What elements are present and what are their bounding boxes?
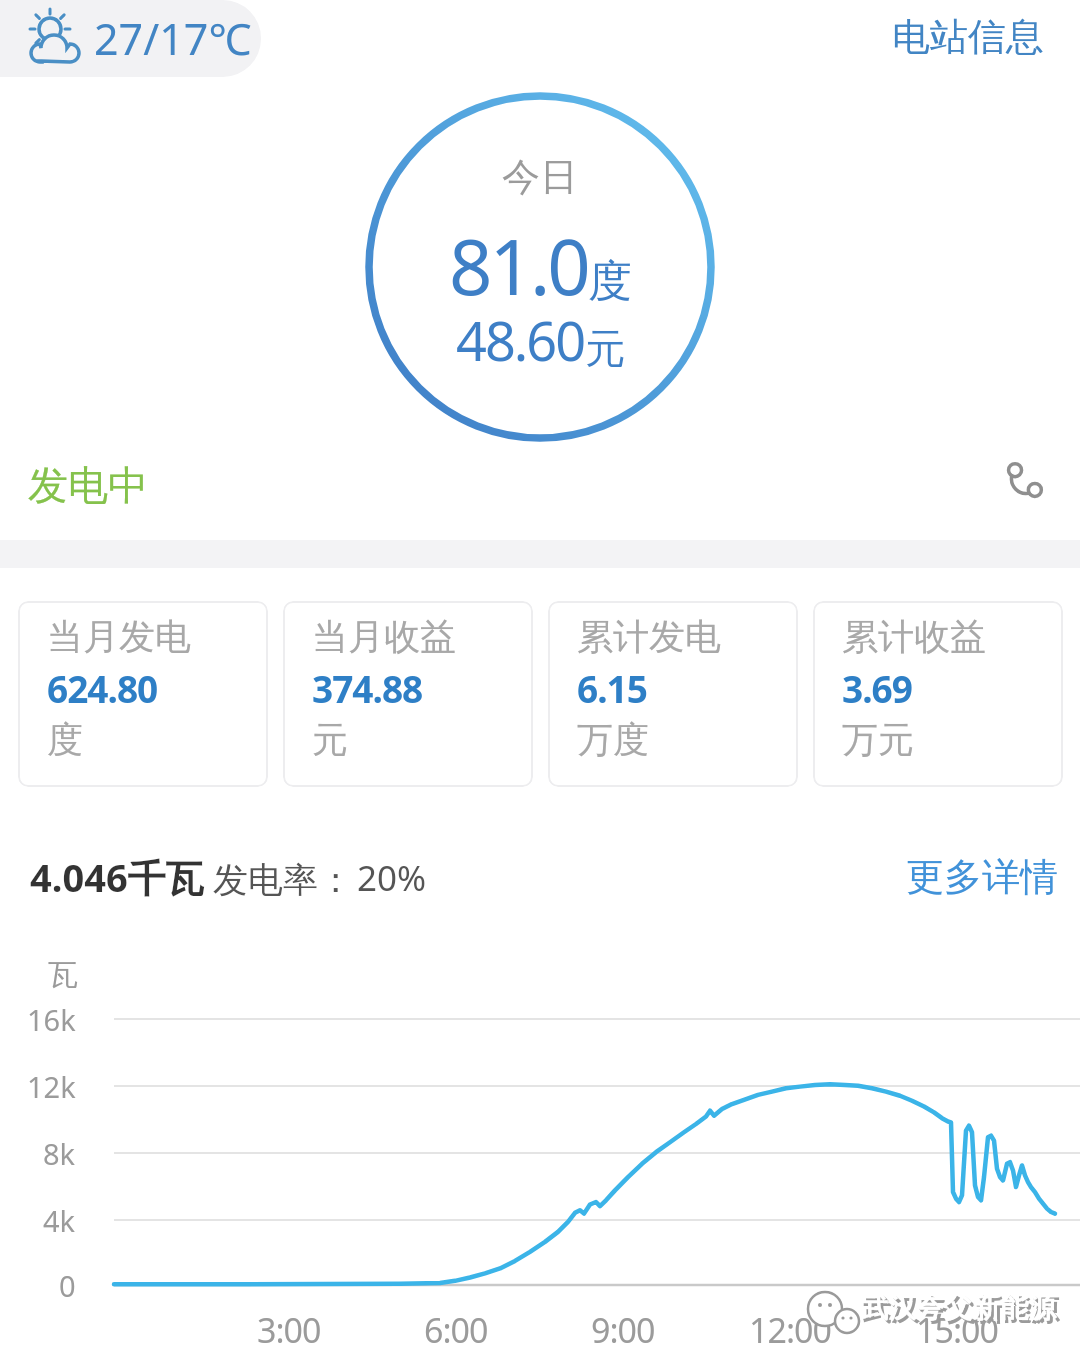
button[interactable]: [998, 463, 1042, 507]
staticText: 武汉夸父新能源: [863, 1293, 1059, 1328]
staticText: 6.15: [577, 663, 647, 713]
staticText: 累计收益: [842, 614, 986, 659]
staticText: 累计发电: [577, 614, 721, 659]
staticText: 6:00: [424, 1307, 488, 1353]
staticText: 27/17℃: [94, 9, 252, 68]
staticText: 万度: [577, 717, 649, 762]
staticText: 今日: [502, 153, 578, 201]
button[interactable]: 累计收益: [813, 601, 1063, 787]
staticText: 8k: [43, 1134, 76, 1173]
staticText: 元: [585, 323, 625, 373]
staticText: 81.0: [449, 214, 588, 318]
staticText: 16k: [27, 1000, 76, 1039]
button[interactable]: 电站信息: [892, 13, 1044, 61]
staticText: 374.88: [312, 663, 423, 713]
staticText: 发电率：: [213, 858, 353, 902]
staticText: 20%: [357, 854, 427, 902]
staticText: 48.60: [456, 303, 585, 377]
staticText: 元: [312, 717, 348, 762]
staticText: 发电中: [28, 460, 148, 510]
staticText: 4k: [43, 1201, 76, 1240]
staticText: 624.80: [47, 663, 158, 713]
staticText: 3:00: [257, 1307, 321, 1353]
staticText: 万元: [842, 717, 914, 762]
staticText: 当月发电: [47, 614, 191, 659]
button[interactable]: 当月收益: [283, 601, 533, 787]
staticText: 0: [59, 1266, 76, 1305]
staticText: 度: [588, 254, 632, 309]
staticText: 武汉夸父新能源: [860, 1290, 1056, 1325]
staticText: 电站信息: [892, 13, 1044, 61]
staticText: 15:00: [916, 1307, 998, 1353]
button[interactable]: 27/17℃: [0, 0, 261, 77]
staticText: 瓦: [48, 956, 78, 994]
staticText: 12k: [27, 1067, 76, 1106]
staticText: 9:00: [591, 1307, 655, 1353]
staticText: 当月收益: [312, 614, 456, 659]
staticText: 12:00: [749, 1307, 831, 1353]
staticText: 更多详情: [906, 853, 1058, 901]
button[interactable]: 累计发电: [548, 601, 798, 787]
button[interactable]: 更多详情: [906, 853, 1058, 901]
staticText: 3.69: [842, 663, 912, 713]
button[interactable]: 当月发电: [18, 601, 268, 787]
staticText: 度: [47, 717, 83, 762]
staticText: 4.046千瓦: [30, 851, 204, 903]
